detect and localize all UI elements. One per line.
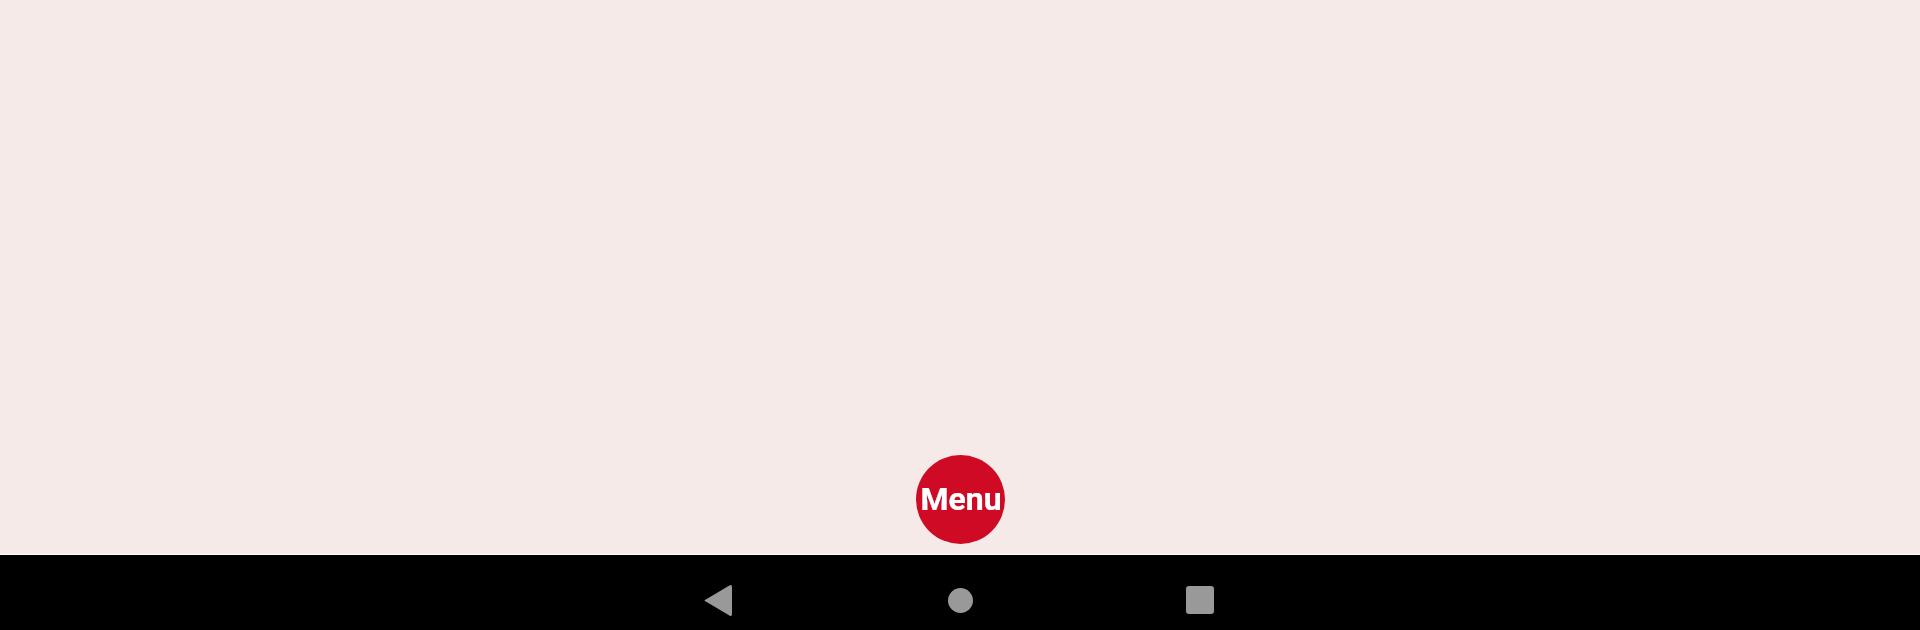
button[interactable]: Recent apps [1177,577,1223,623]
button[interactable]: Back [695,577,741,623]
button[interactable]: Home [937,577,983,623]
staticText: Menu [920,480,1002,518]
button[interactable]: Menu [916,455,1005,544]
